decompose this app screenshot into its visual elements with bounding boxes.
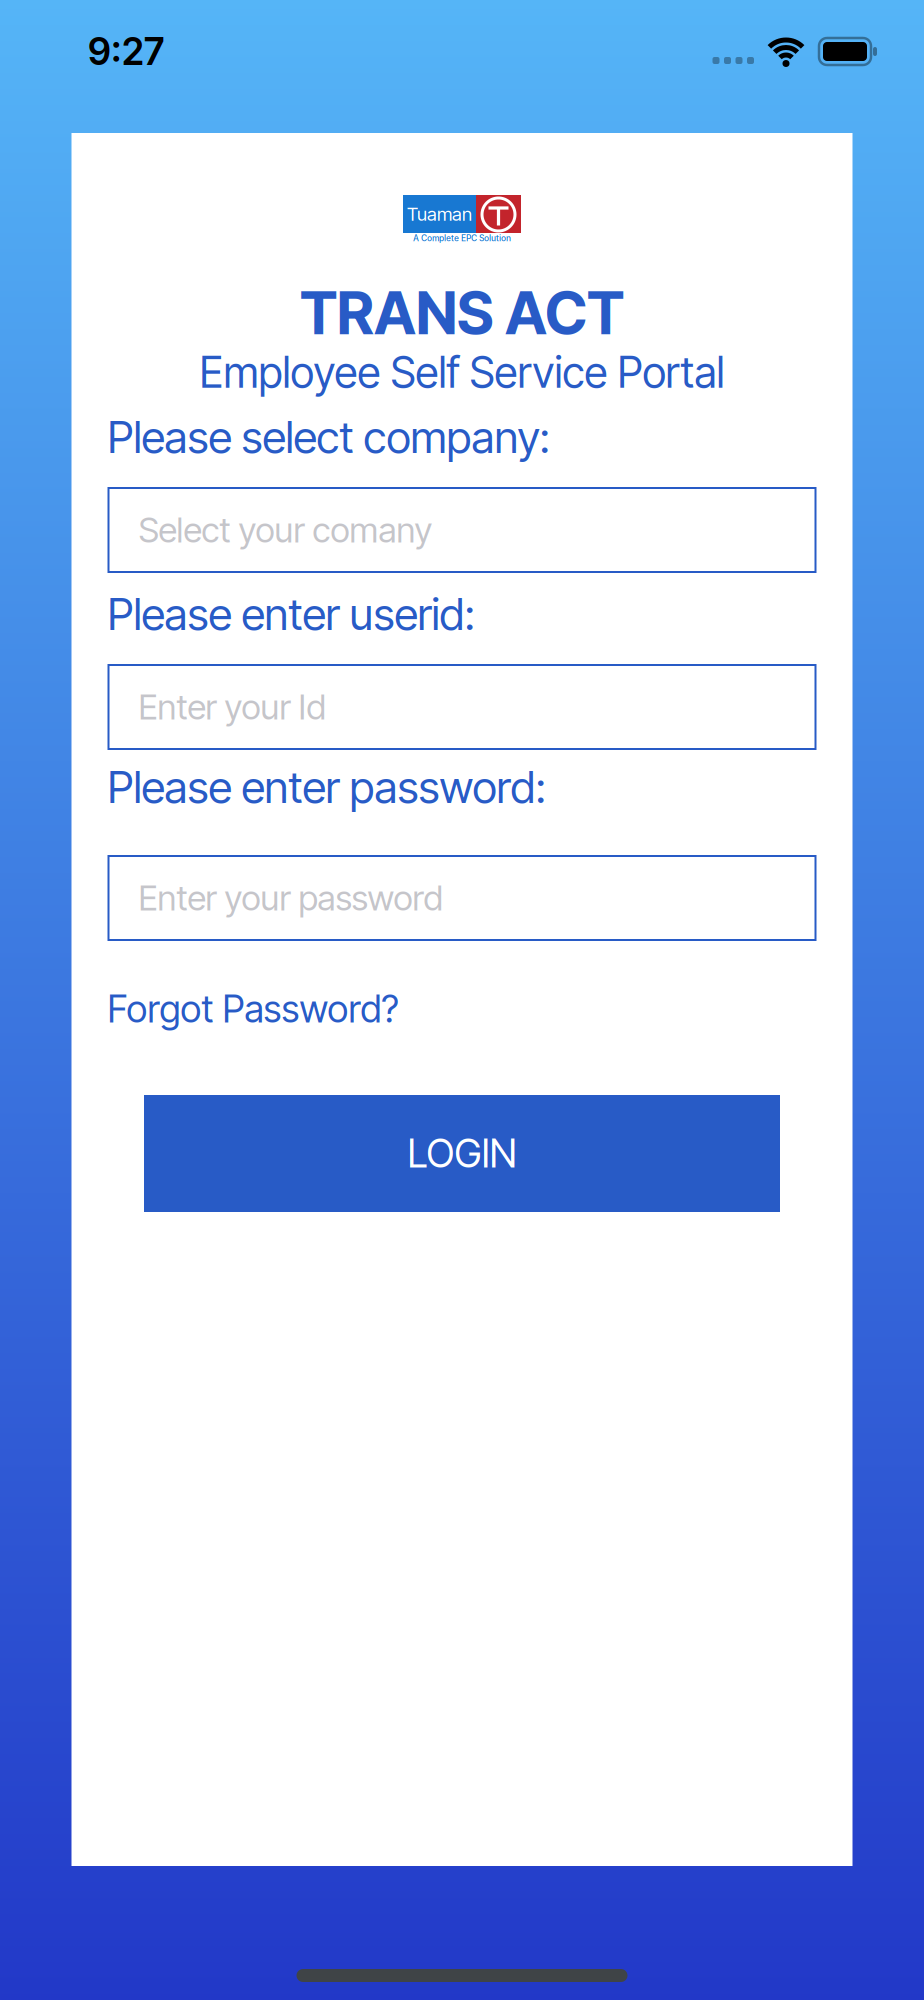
staticText: Enter your Id: [138, 687, 325, 727]
staticText: Please enter userid:: [107, 588, 474, 640]
button[interactable]: Forgot Password?: [107, 987, 398, 1031]
staticText: Forgot Password?: [107, 987, 398, 1031]
staticText: 9:27: [88, 29, 164, 73]
staticText: LOGIN: [407, 1131, 516, 1176]
staticText: Enter your password: [138, 878, 442, 918]
staticText: Employee Self Service Portal: [199, 347, 724, 397]
button[interactable]: Select your comany: [107, 487, 816, 573]
button[interactable]: LOGIN: [144, 1095, 780, 1212]
staticText: TRANS ACT: [300, 278, 624, 348]
staticText: A Complete EPC Solution: [413, 233, 511, 243]
staticText: Tuaman: [407, 203, 472, 225]
button[interactable]: Enter your password: [107, 855, 816, 941]
staticText: Please select company:: [107, 411, 549, 463]
button[interactable]: Enter your Id: [107, 664, 816, 750]
staticText: Please enter password:: [107, 761, 545, 813]
staticText: Select your comany: [138, 510, 432, 550]
